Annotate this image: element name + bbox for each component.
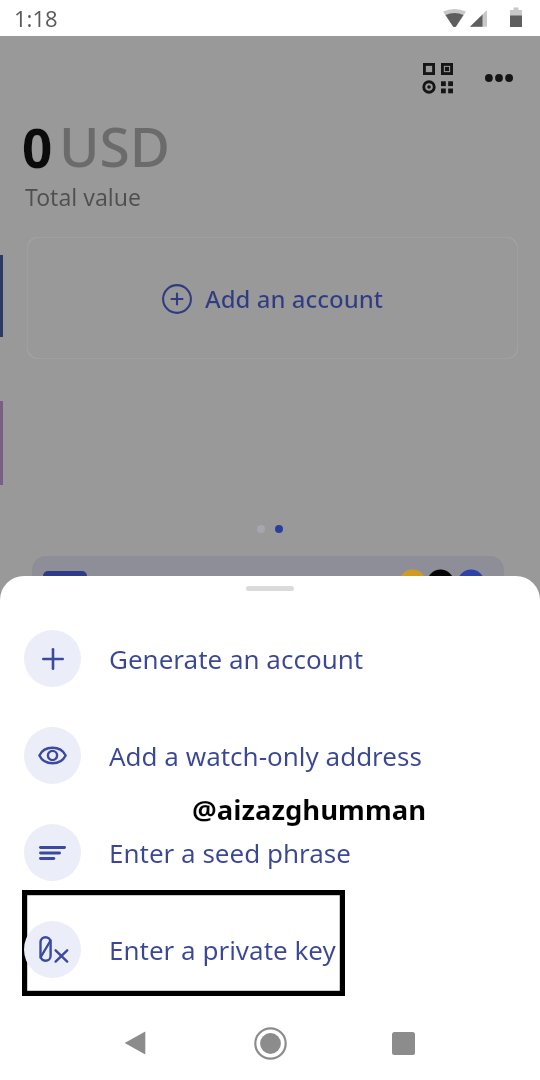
staticText: @aizazghumman [192, 791, 427, 828]
staticText: Enter a private key [109, 932, 336, 967]
staticText: Generate an account [109, 641, 364, 676]
button[interactable]: Enter a seed phrase [0, 804, 540, 901]
button[interactable]: Scan QR code [415, 55, 461, 101]
staticText: Total value [25, 181, 141, 212]
staticText: USD [59, 108, 171, 183]
button[interactable]: Enter a private key [0, 901, 540, 998]
button[interactable]: Add an account [27, 237, 518, 359]
button[interactable]: Generate an account [0, 610, 540, 707]
staticText: Add a watch-only address [109, 738, 422, 773]
button[interactable]: Add a watch-only address [0, 707, 540, 804]
button[interactable]: More options [476, 55, 522, 101]
staticText: Add an account [205, 282, 383, 315]
staticText: Enter a seed phrase [109, 835, 351, 870]
button[interactable]: Back [105, 1013, 165, 1073]
staticText: 1:18 [14, 3, 58, 33]
button[interactable]: Home [240, 1013, 300, 1073]
button[interactable]: Recent apps [373, 1013, 433, 1073]
staticText: 0 [22, 111, 53, 183]
